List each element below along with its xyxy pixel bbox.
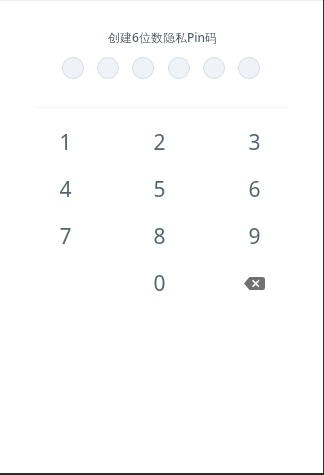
button[interactable]: 1 (18, 119, 112, 166)
staticText: 1 (59, 128, 72, 157)
button[interactable]: 8 (112, 213, 207, 260)
staticText: 9 (248, 222, 261, 251)
button[interactable]: Backspace (207, 260, 302, 307)
button[interactable]: 4 (18, 166, 112, 213)
staticText: 创建6位数隐私Pin码 (108, 29, 217, 45)
button[interactable]: 7 (18, 213, 112, 260)
button[interactable]: 2 (112, 119, 207, 166)
staticText: 6 (248, 175, 261, 204)
staticText: 7 (59, 222, 72, 251)
staticText: 8 (153, 222, 166, 251)
staticText: 5 (153, 175, 166, 204)
button[interactable]: 3 (207, 119, 302, 166)
button[interactable]: 5 (112, 166, 207, 213)
button[interactable]: 0 (112, 260, 207, 307)
staticText: 3 (248, 128, 261, 157)
staticText: 0 (153, 269, 166, 298)
button[interactable]: 9 (207, 213, 302, 260)
button[interactable]: 6 (207, 166, 302, 213)
staticText: 4 (59, 175, 72, 204)
staticText: 2 (153, 128, 166, 157)
